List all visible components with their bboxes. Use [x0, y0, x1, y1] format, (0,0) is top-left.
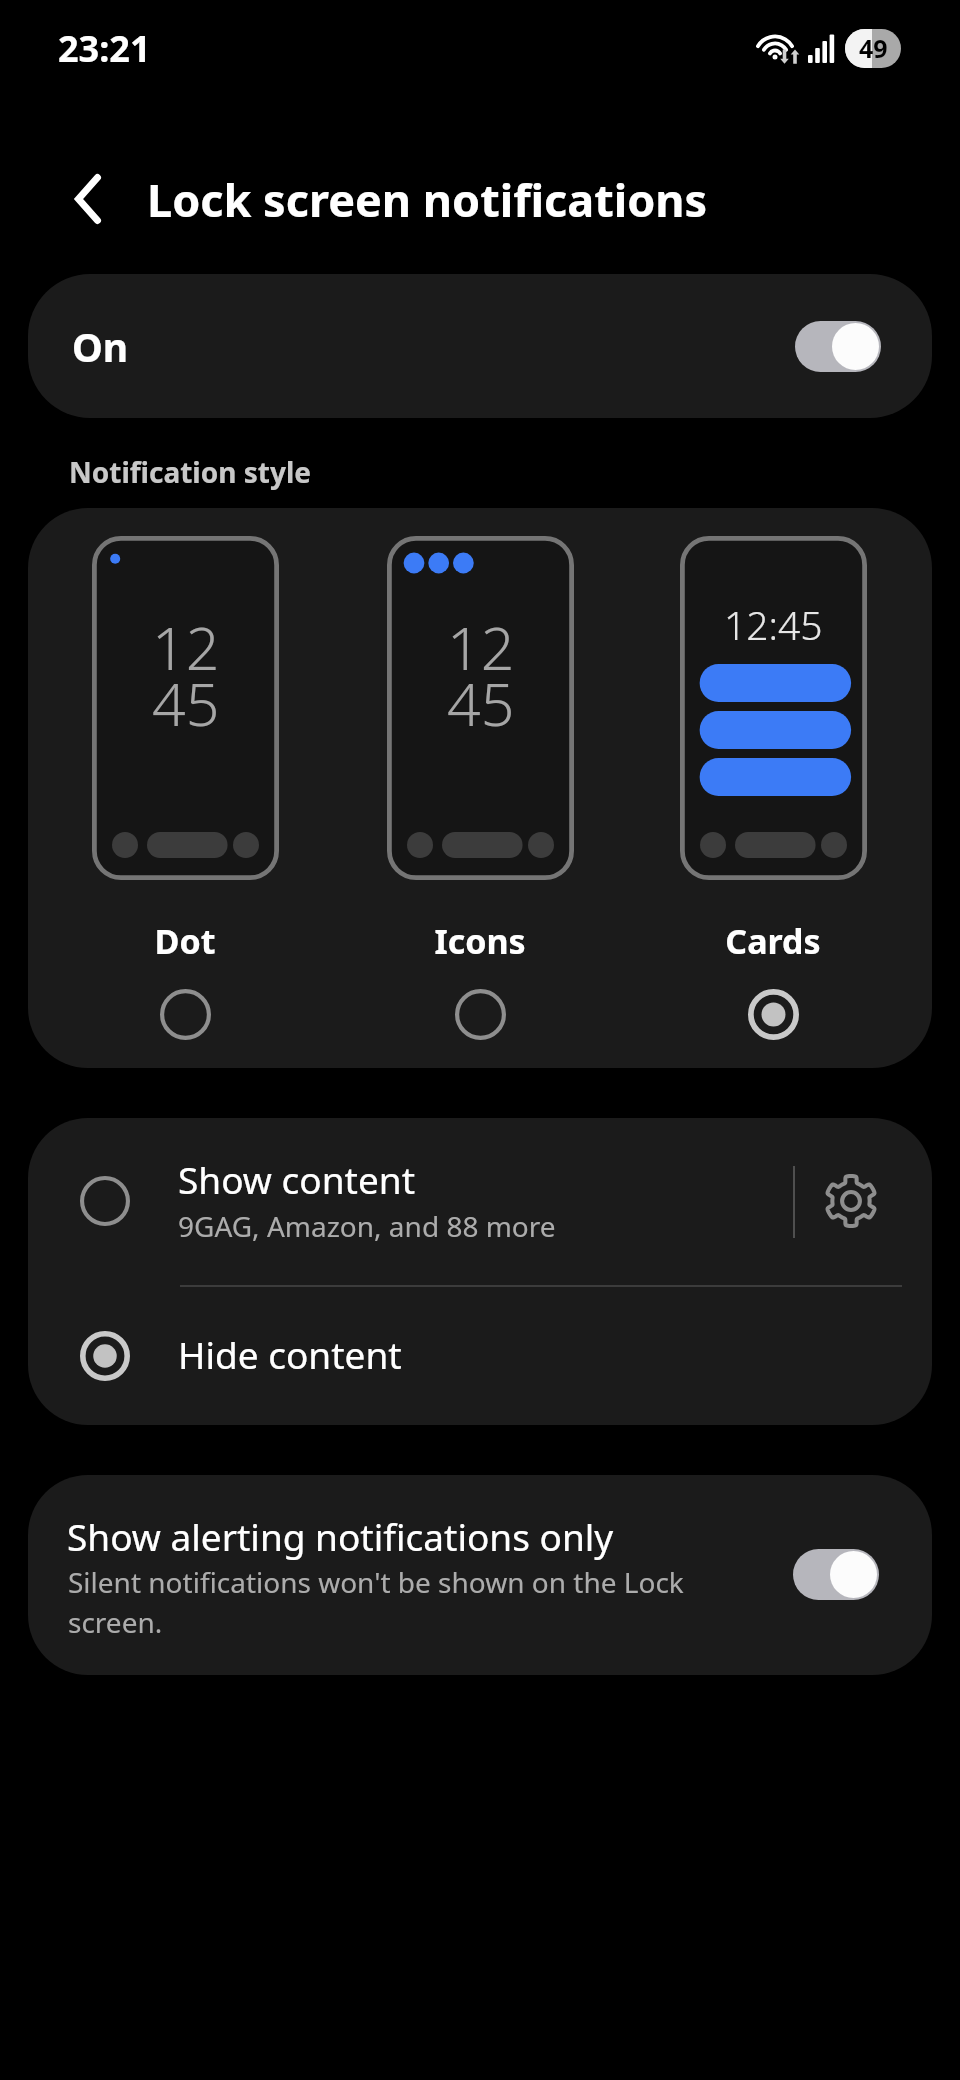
- staticText: 45: [152, 663, 220, 743]
- staticText: Show alerting notifications only: [67, 1511, 614, 1561]
- button[interactable]: [28, 1287, 932, 1425]
- staticText: Cards: [663, 918, 883, 964]
- staticText: Dot: [75, 918, 295, 964]
- button[interactable]: [28, 1475, 932, 1675]
- button[interactable]: [28, 1118, 788, 1285]
- staticText: Hide content: [178, 1329, 402, 1379]
- staticText: Silent notifications won't be shown on t…: [68, 1563, 700, 1642]
- staticText: 12: [447, 607, 515, 687]
- staticText: 12: [152, 607, 220, 687]
- button[interactable]: On: [28, 274, 932, 418]
- staticText: 23:21: [58, 24, 151, 73]
- staticText: 45: [447, 663, 515, 743]
- button[interactable]: Settings: [792, 1141, 910, 1261]
- button[interactable]: [60, 520, 310, 1050]
- staticText: 12:45: [724, 598, 823, 651]
- staticText: Lock screen notifications: [147, 169, 708, 230]
- button[interactable]: [355, 520, 605, 1050]
- staticText: On: [72, 320, 129, 373]
- button[interactable]: Back: [55, 166, 121, 232]
- button[interactable]: [648, 520, 898, 1050]
- staticText: Icons: [370, 918, 590, 964]
- staticText: Show content: [178, 1154, 415, 1204]
- staticText: 49: [859, 31, 888, 65]
- staticText: Notification style: [69, 453, 311, 491]
- staticText: 9GAG, Amazon, and 88 more: [178, 1207, 556, 1245]
